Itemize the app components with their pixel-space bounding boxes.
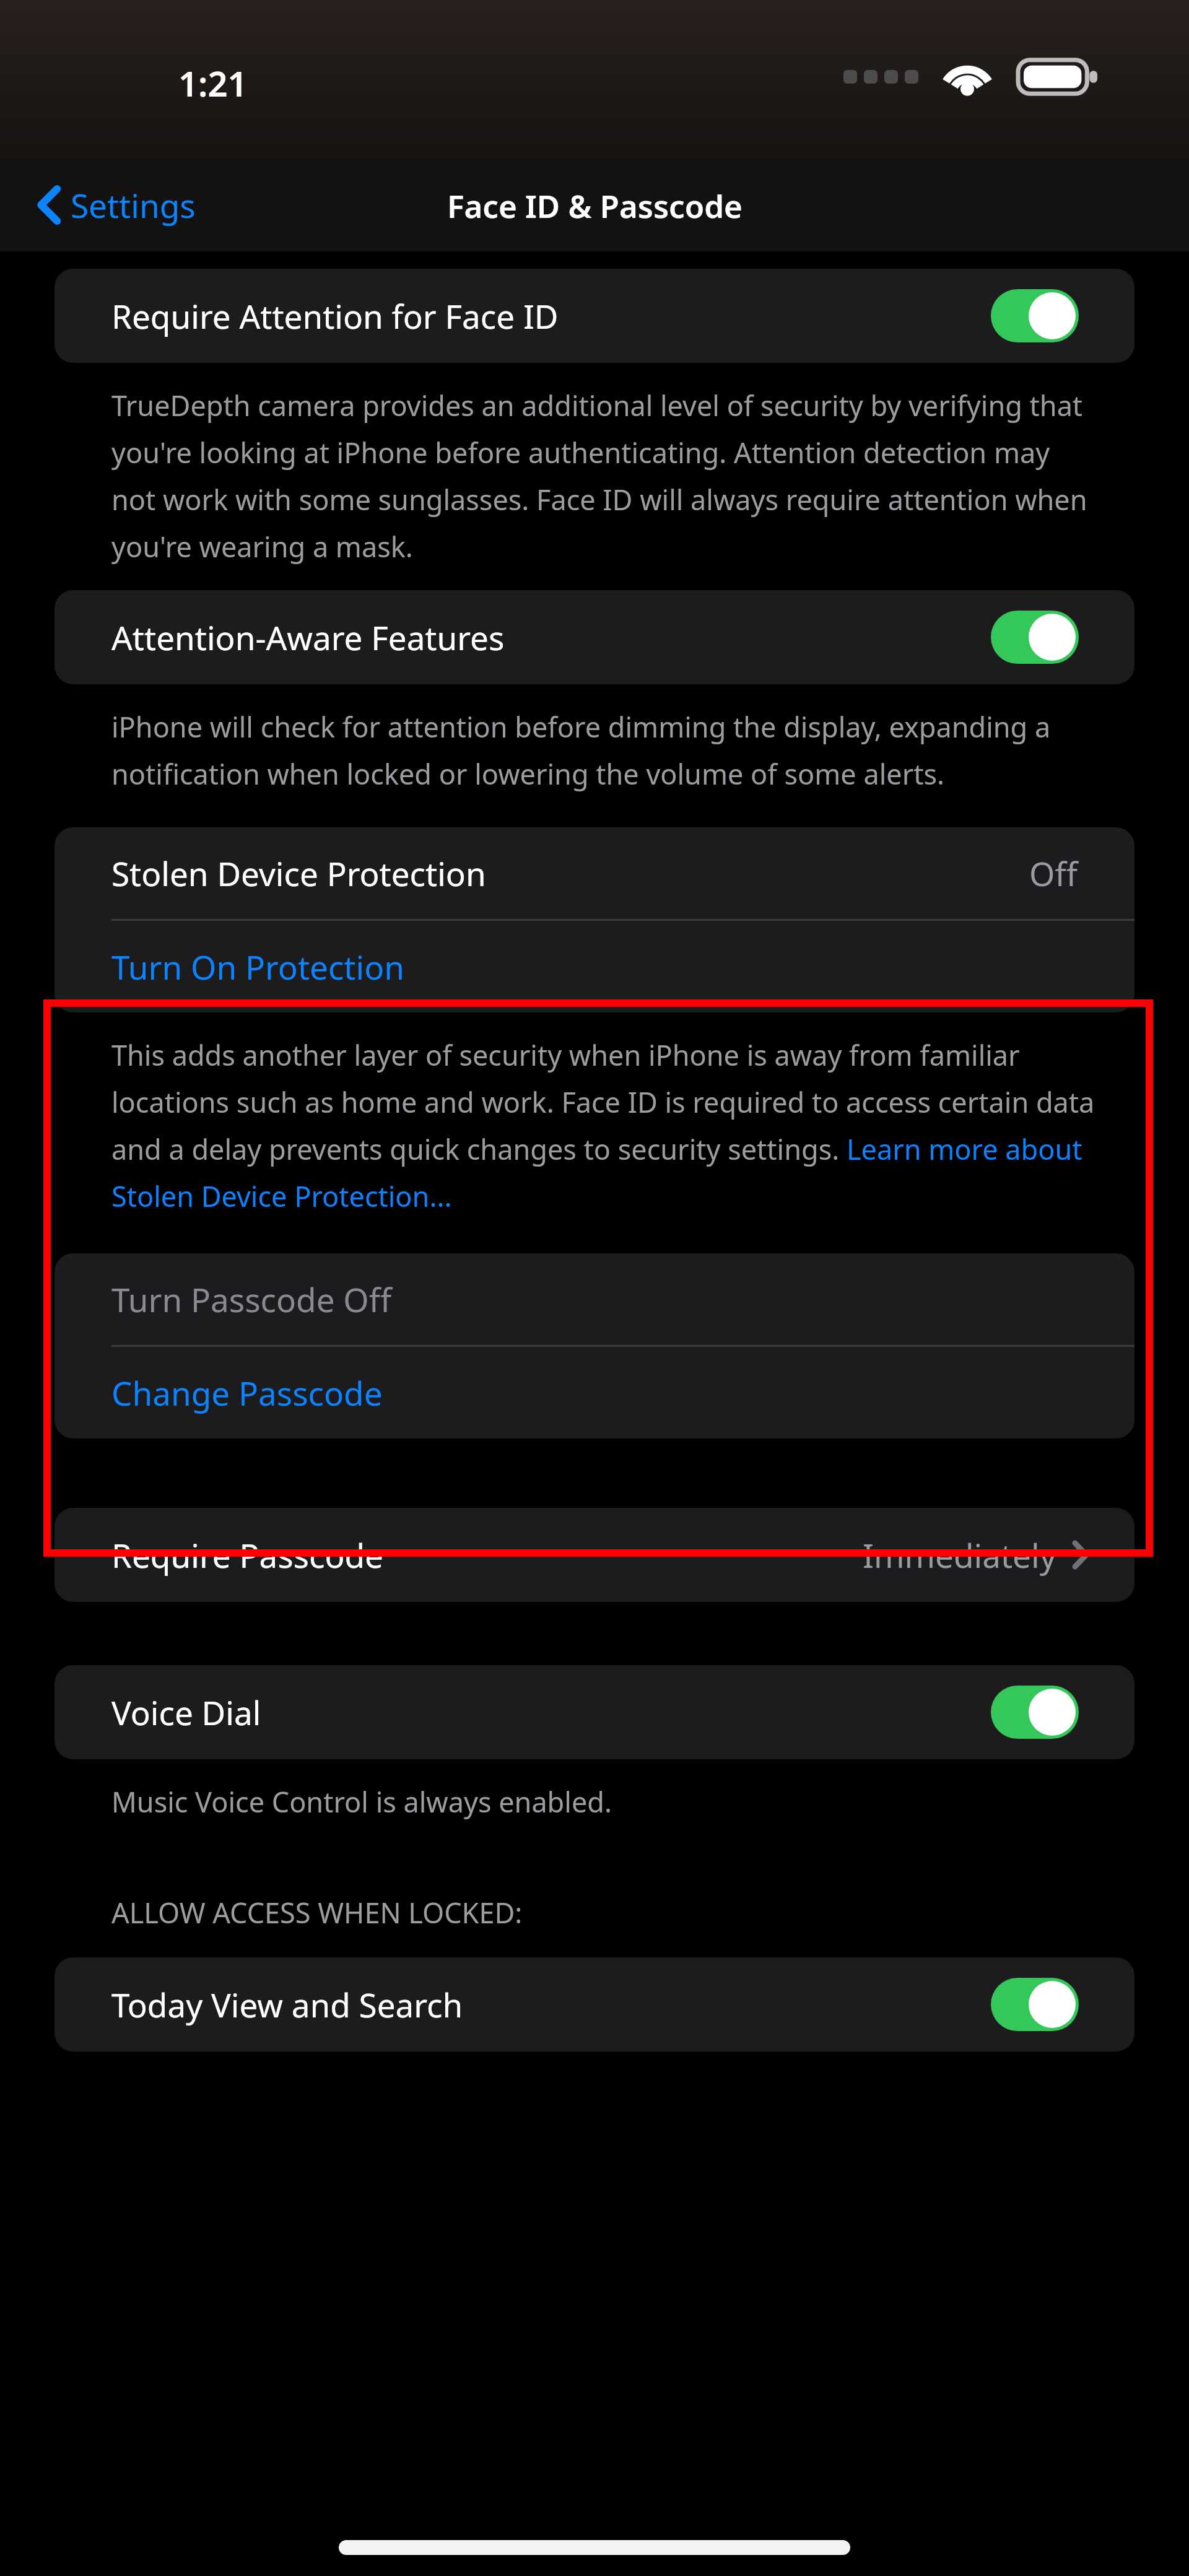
staticText: Immediately (863, 1533, 1056, 1577)
staticText: Require Attention for Face ID (111, 294, 559, 338)
other: On (991, 1686, 1079, 1739)
staticText: Turn Passcode Off (111, 1277, 392, 1321)
staticText: iPhone will check for attention before d… (111, 708, 1096, 793)
staticText: Stolen Device Protection (111, 851, 486, 895)
staticText: Voice Dial (111, 1690, 261, 1734)
other: On (991, 1978, 1079, 2031)
staticText: Attention-Aware Features (111, 615, 505, 659)
staticText: Music Voice Control is always enabled. (111, 1783, 1096, 1821)
button[interactable]: Stolen Device Protection (54, 827, 1135, 919)
staticText: Turn On Protection (111, 944, 404, 989)
button[interactable]: Require Passcode (54, 1508, 1135, 1602)
staticText: Require Passcode (111, 1533, 383, 1577)
other: On (991, 289, 1079, 342)
button[interactable]: Voice Dial (54, 1665, 1135, 1759)
staticText: Change Passcode (111, 1370, 383, 1415)
button[interactable]: Turn On Protection (54, 921, 1135, 1012)
staticText: 1:21 (178, 59, 248, 107)
button[interactable]: This adds another layer of security when… (111, 1036, 1096, 1215)
staticText: Face ID & Passcode (447, 184, 743, 227)
staticText: Today View and Search (111, 1982, 463, 2027)
staticText: TrueDepth camera provides an additional … (111, 386, 1096, 565)
staticText: ALLOW ACCESS WHEN LOCKED: (111, 1894, 1189, 1931)
staticText: Off (1029, 851, 1078, 895)
button[interactable]: Change Passcode (54, 1347, 1135, 1438)
button[interactable]: Today View and Search (54, 1957, 1135, 2052)
other: On (991, 611, 1079, 664)
button[interactable]: Attention-Aware Features (54, 590, 1135, 684)
button[interactable]: Require Attention for Face ID (54, 269, 1135, 363)
button[interactable]: Settings (32, 175, 202, 235)
button[interactable]: Turn Passcode Off (54, 1253, 1135, 1345)
staticText: Settings (71, 183, 196, 227)
